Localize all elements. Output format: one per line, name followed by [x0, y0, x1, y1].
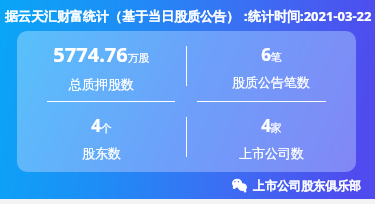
staticText: 4家 [261, 114, 282, 137]
staticText: 据云天汇财富统计（基于当日股质公告）： [5, 8, 252, 24]
other: WeChat official account [232, 178, 247, 193]
button[interactable]: 4家 [186, 102, 356, 172]
staticText: 5774.76万股 [53, 41, 150, 68]
staticText: 股东数 [82, 145, 121, 161]
staticText: 统计时间:2021-03-22 [248, 7, 372, 25]
staticText: 4个 [91, 114, 112, 137]
button[interactable]: 4个 [17, 102, 186, 172]
button[interactable]: 5774.76万股 [17, 31, 356, 172]
staticText: 总质押股数 [69, 76, 134, 92]
button[interactable]: 6笔 [186, 31, 356, 101]
staticText: 6笔 [261, 43, 282, 66]
staticText: 上市公司股东俱乐部 [253, 178, 361, 193]
button[interactable]: 5774.76万股 [17, 31, 186, 101]
staticText: 股质公告笔数 [232, 74, 310, 90]
staticText: 上市公司数 [239, 145, 304, 161]
button[interactable]: WeChat official account [0, 172, 375, 199]
